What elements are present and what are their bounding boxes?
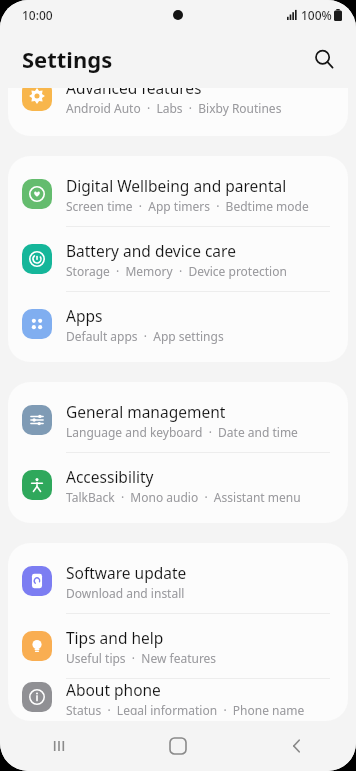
button[interactable]: General management bbox=[8, 388, 348, 452]
staticText: About phone bbox=[66, 679, 161, 700]
staticText: Software update bbox=[66, 562, 187, 583]
button[interactable]: Tips and help bbox=[8, 614, 348, 678]
staticText: Status · Legal information · Phone name bbox=[66, 702, 305, 715]
staticText: Download and install bbox=[66, 585, 185, 601]
staticText: Advanced features bbox=[66, 88, 202, 98]
staticText: Settings bbox=[22, 44, 113, 74]
staticText: Screen time · App timers · Bedtime mode bbox=[66, 198, 309, 214]
button[interactable]: Back bbox=[237, 721, 356, 771]
button[interactable]: Advanced features bbox=[8, 88, 348, 120]
staticText: Useful tips · New features bbox=[66, 650, 217, 666]
staticText: Digital Wellbeing and parental controls bbox=[66, 175, 332, 196]
staticText: General management bbox=[66, 401, 226, 422]
staticText: Battery and device care bbox=[66, 240, 236, 261]
staticText: Apps bbox=[66, 305, 103, 326]
staticText: 10:00 bbox=[22, 7, 53, 23]
staticText: 100% bbox=[301, 7, 332, 23]
button[interactable]: About phone bbox=[8, 679, 348, 715]
button[interactable]: Accessibility bbox=[8, 453, 348, 517]
button[interactable]: Recents bbox=[0, 721, 118, 771]
button[interactable]: Software update bbox=[8, 549, 348, 613]
staticText: Tips and help bbox=[66, 627, 164, 648]
button[interactable]: Search bbox=[304, 39, 344, 79]
button[interactable]: Home bbox=[118, 721, 237, 771]
button[interactable]: Apps bbox=[8, 292, 348, 356]
staticText: Language and keyboard · Date and time bbox=[66, 424, 298, 440]
staticText: Accessibility bbox=[66, 466, 154, 487]
button[interactable]: Digital Wellbeing and parental controls bbox=[8, 162, 348, 226]
staticText: Storage · Memory · Device protection bbox=[66, 263, 287, 279]
staticText: Default apps · App settings bbox=[66, 328, 224, 344]
staticText: Android Auto · Labs · Bixby Routines bbox=[66, 100, 282, 116]
staticText: TalkBack · Mono audio · Assistant menu bbox=[66, 489, 301, 505]
button[interactable]: Battery and device care bbox=[8, 227, 348, 291]
